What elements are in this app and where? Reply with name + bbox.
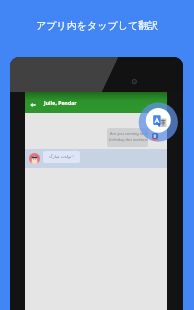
staticText: Julie, Pendar [44, 100, 77, 107]
button[interactable]: Back [25, 92, 167, 113]
staticText: تولدت مبارک ! [49, 154, 74, 160]
button[interactable]: Back [30, 102, 36, 108]
button[interactable]: تولدت مبارک ! [43, 151, 80, 163]
button[interactable]: Are you coming to my [107, 128, 148, 147]
staticText: Are you coming to my [110, 131, 148, 136]
staticText: アプリ内をタップして翻訳 [36, 19, 159, 32]
staticText: birthday this weekend? [109, 137, 148, 142]
button[interactable]: تولدت مبارک ! [25, 149, 167, 168]
